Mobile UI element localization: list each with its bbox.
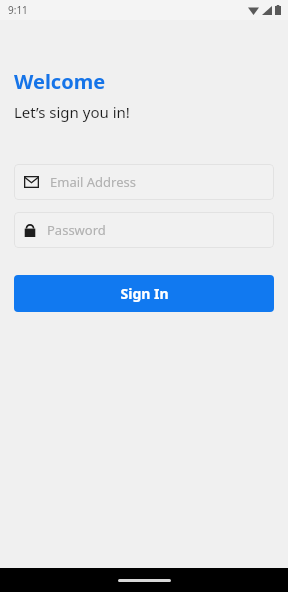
button[interactable]: Sign In: [14, 275, 274, 312]
staticText: Email Address: [50, 173, 136, 191]
staticText: 9:11: [8, 3, 28, 17]
staticText: Sign In: [120, 284, 169, 303]
staticText: Password: [47, 221, 106, 239]
button[interactable]: Password: [14, 212, 274, 248]
button[interactable]: Email Address: [14, 164, 274, 200]
staticText: Welcome: [14, 68, 106, 95]
other: Home: [118, 579, 171, 582]
staticText: Let’s sign you in!: [14, 102, 130, 122]
